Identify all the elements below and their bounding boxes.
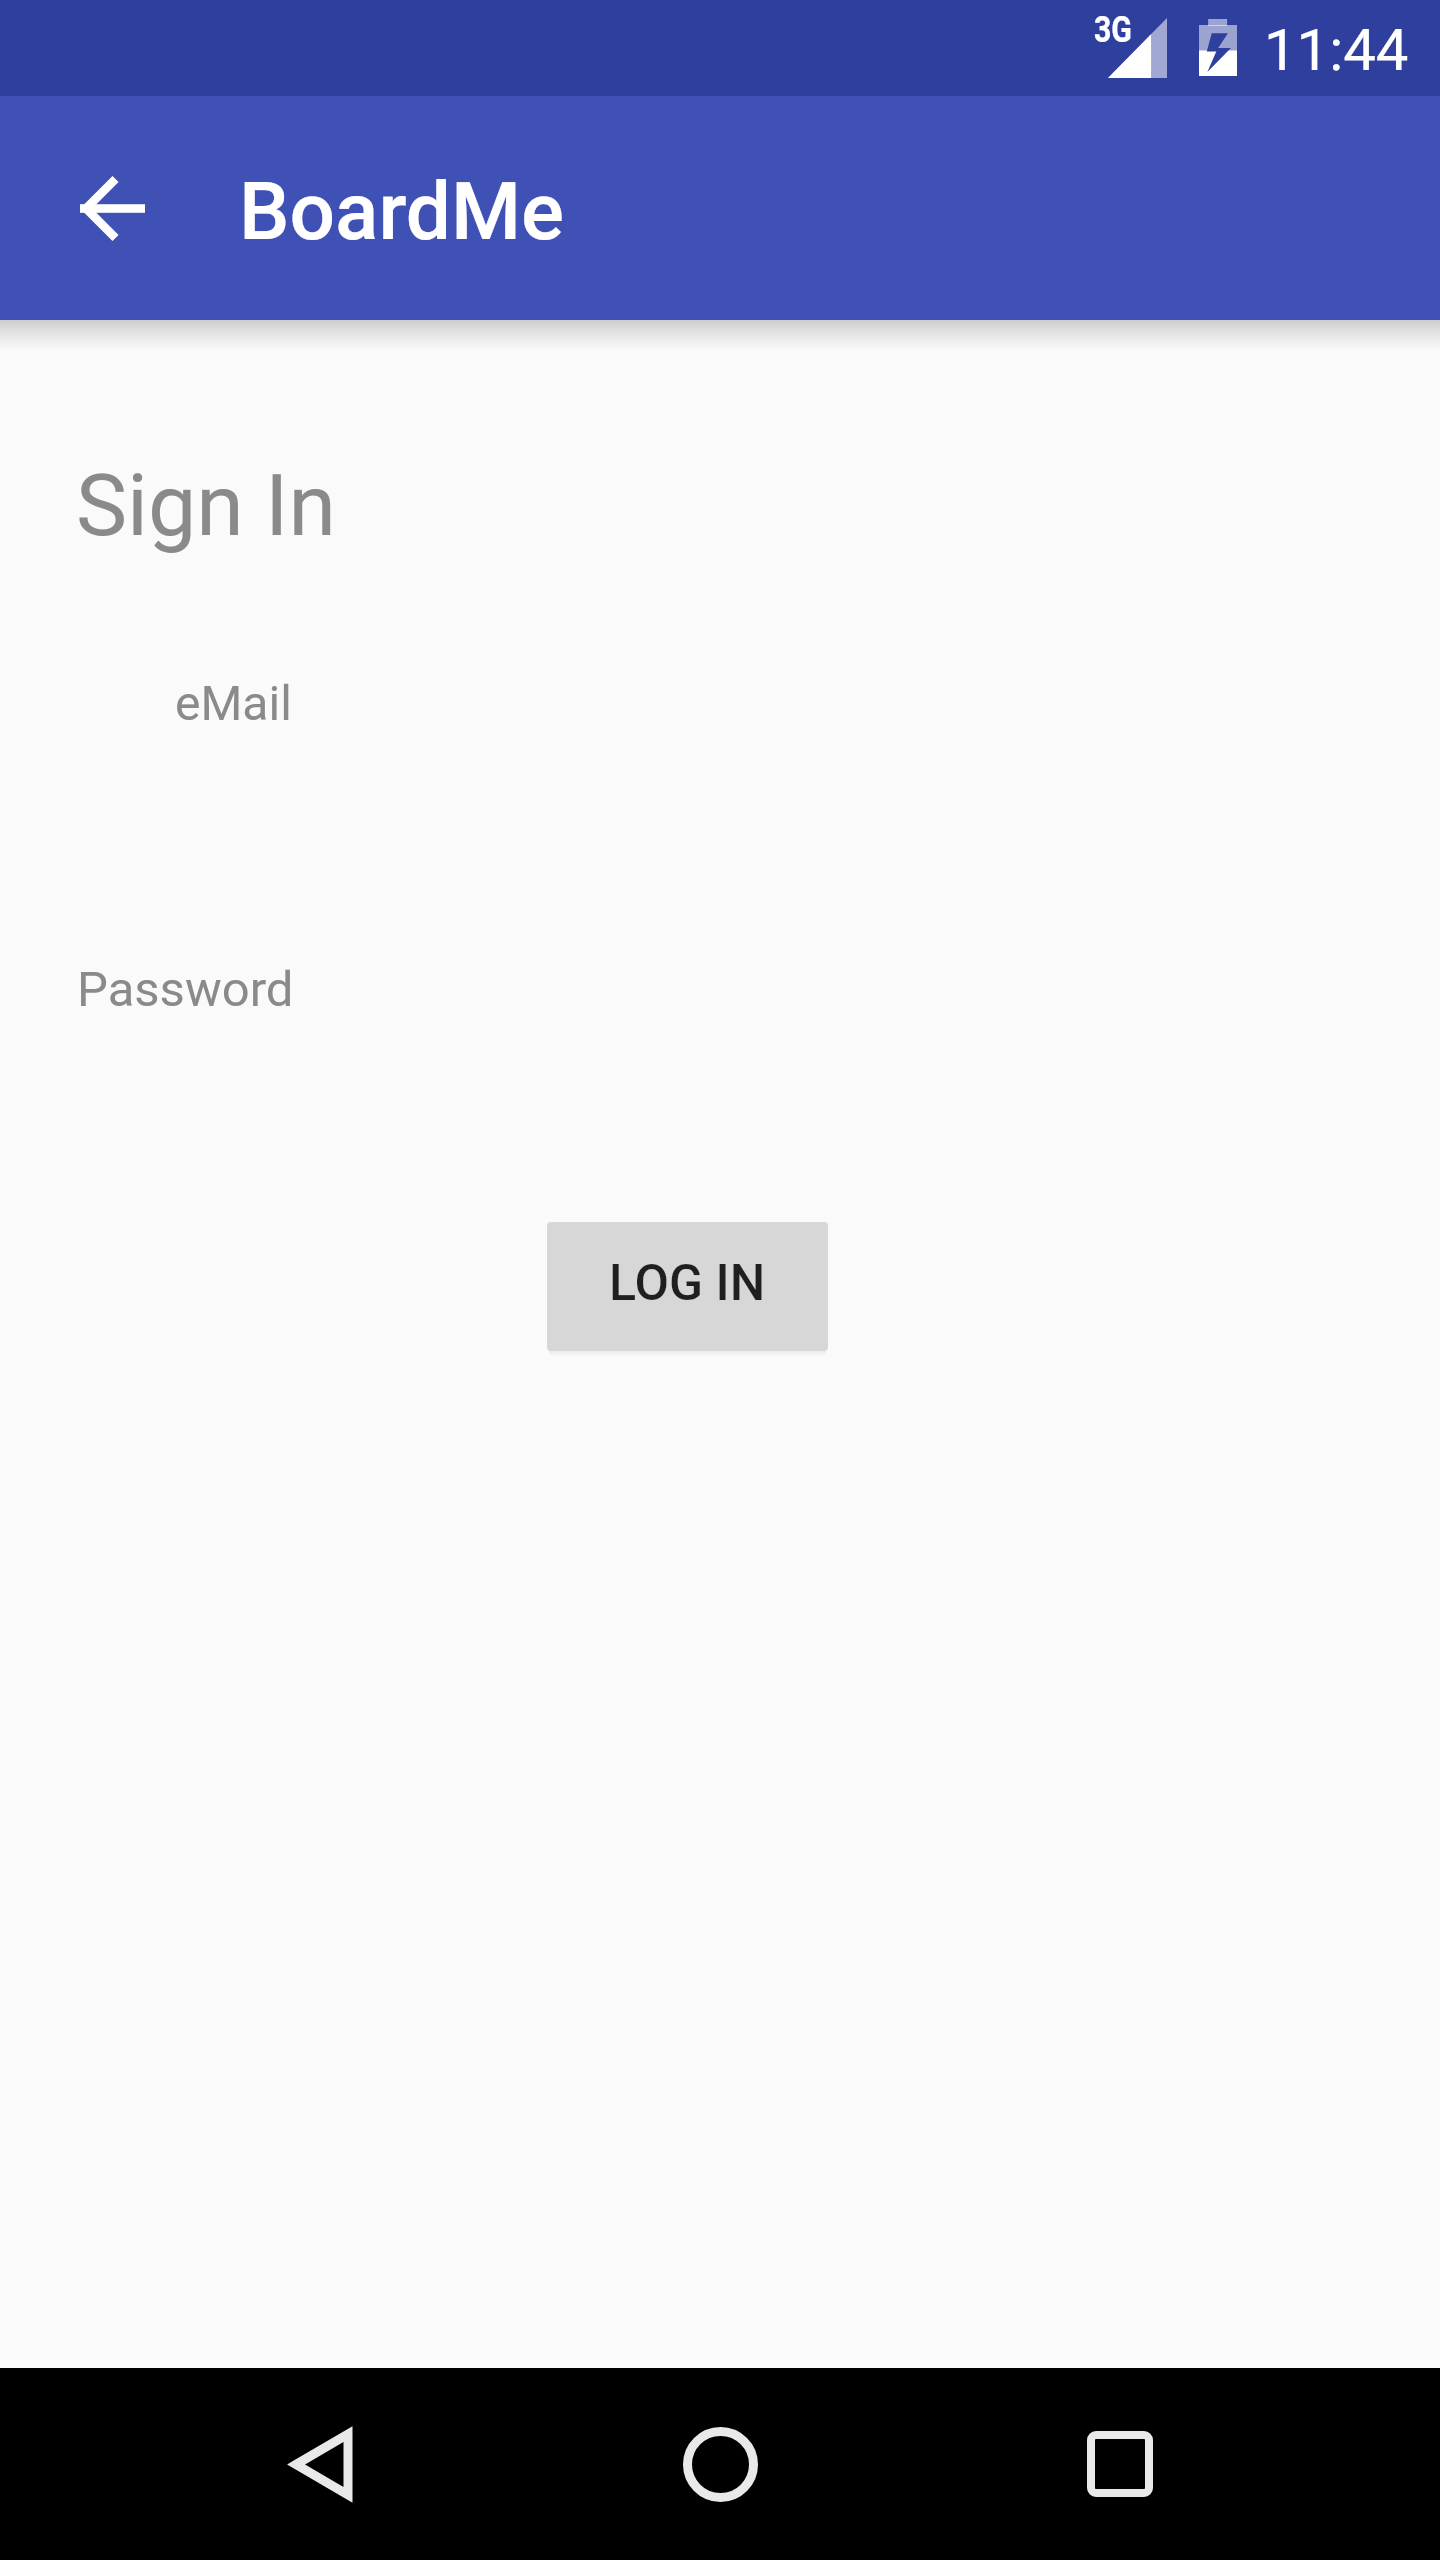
staticText: BoardMe [239,165,564,259]
staticText: 11:44 [1264,16,1409,84]
button[interactable]: Home [624,2368,816,2560]
staticText: LOG IN [609,1254,766,1313]
staticText: eMail [175,675,292,731]
staticText: 3G [1094,9,1133,51]
button[interactable]: LOG IN [547,1222,828,1351]
button[interactable]: Navigate up [40,136,184,280]
button[interactable]: Overview [1024,2368,1216,2560]
staticText: Password [77,961,294,1018]
staticText: Sign In [76,455,336,556]
button[interactable]: Back [224,2368,416,2560]
